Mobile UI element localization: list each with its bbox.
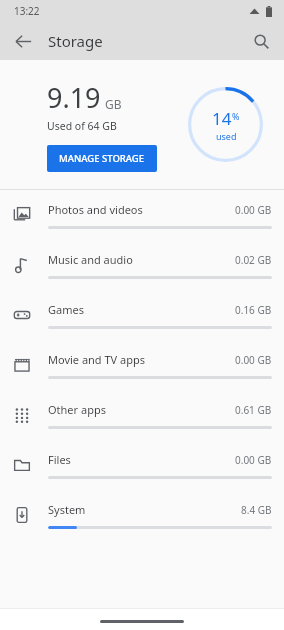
button[interactable]: Games bbox=[0, 290, 284, 340]
staticText: 0.00 GB bbox=[235, 203, 272, 217]
staticText: 9.19 bbox=[47, 79, 101, 116]
staticText: System bbox=[48, 502, 241, 517]
staticText: Games bbox=[48, 302, 235, 317]
button[interactable]: System bbox=[0, 490, 284, 540]
staticText: MANAGE STORAGE bbox=[59, 152, 145, 165]
staticText: 0.02 GB bbox=[235, 253, 272, 267]
staticText: Used of 64 GB bbox=[47, 119, 117, 133]
staticText: Other apps bbox=[48, 402, 235, 417]
button[interactable]: Movie and TV apps bbox=[0, 340, 284, 390]
button[interactable]: Music and audio bbox=[0, 240, 284, 290]
staticText: used bbox=[216, 130, 237, 142]
button[interactable]: Search bbox=[246, 26, 276, 56]
staticText: 13:22 bbox=[14, 4, 40, 18]
staticText: 0.00 GB bbox=[235, 353, 272, 367]
staticText: Files bbox=[48, 452, 235, 467]
staticText: GB bbox=[105, 96, 122, 112]
staticText: 14 bbox=[212, 107, 232, 130]
staticText: 0.00 GB bbox=[235, 453, 272, 467]
staticText: % bbox=[232, 110, 240, 122]
staticText: 0.16 GB bbox=[235, 303, 272, 317]
staticText: 0.61 GB bbox=[235, 403, 272, 417]
staticText: 8.4 GB bbox=[241, 503, 272, 517]
staticText: Movie and TV apps bbox=[48, 352, 235, 367]
staticText: Music and audio bbox=[48, 252, 235, 267]
button[interactable]: Other apps bbox=[0, 390, 284, 440]
button[interactable]: Back bbox=[8, 26, 38, 56]
staticText: Photos and videos bbox=[48, 202, 235, 217]
button[interactable]: Files bbox=[0, 440, 284, 490]
button[interactable]: Photos and videos bbox=[0, 190, 284, 240]
button[interactable]: MANAGE STORAGE bbox=[47, 145, 157, 172]
staticText: Storage bbox=[48, 31, 103, 51]
